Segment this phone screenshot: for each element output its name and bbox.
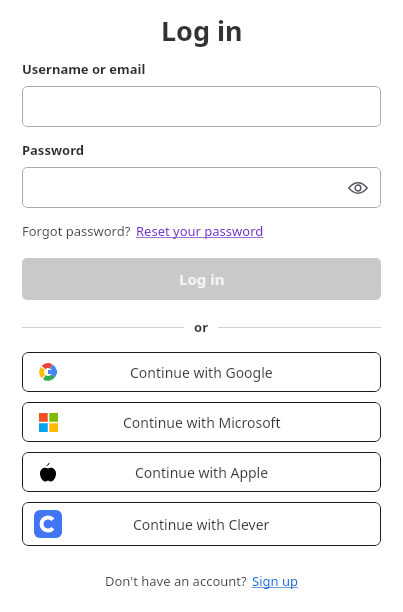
staticText: Log in	[179, 269, 225, 289]
button[interactable]: Reset your password	[136, 222, 264, 240]
button[interactable]: Continue with Google	[22, 352, 381, 392]
button[interactable]: Show password	[345, 175, 371, 201]
button[interactable]: Show password	[22, 167, 381, 208]
button[interactable]: Log in	[22, 258, 381, 300]
staticText: Sign up	[252, 572, 298, 590]
staticText: Don't have an account?	[105, 572, 247, 590]
staticText: Forgot password?	[22, 222, 131, 240]
staticText: Continue with Clever	[133, 515, 270, 534]
button[interactable]: Sign up	[252, 572, 298, 590]
staticText: or	[194, 318, 208, 336]
staticText: Reset your password	[136, 222, 264, 240]
staticText: Continue with Google	[130, 363, 273, 382]
staticText: Continue with Apple	[135, 463, 269, 482]
button[interactable]: Continue with Apple	[22, 452, 381, 492]
button[interactable]	[22, 86, 381, 127]
staticText: Continue with Microsoft	[123, 413, 281, 432]
staticText: Username or email	[22, 60, 146, 78]
button[interactable]: Continue with Clever	[22, 502, 381, 546]
button[interactable]: Continue with Microsoft	[22, 402, 381, 442]
staticText: Log in	[161, 12, 243, 49]
staticText: Password	[22, 141, 84, 159]
